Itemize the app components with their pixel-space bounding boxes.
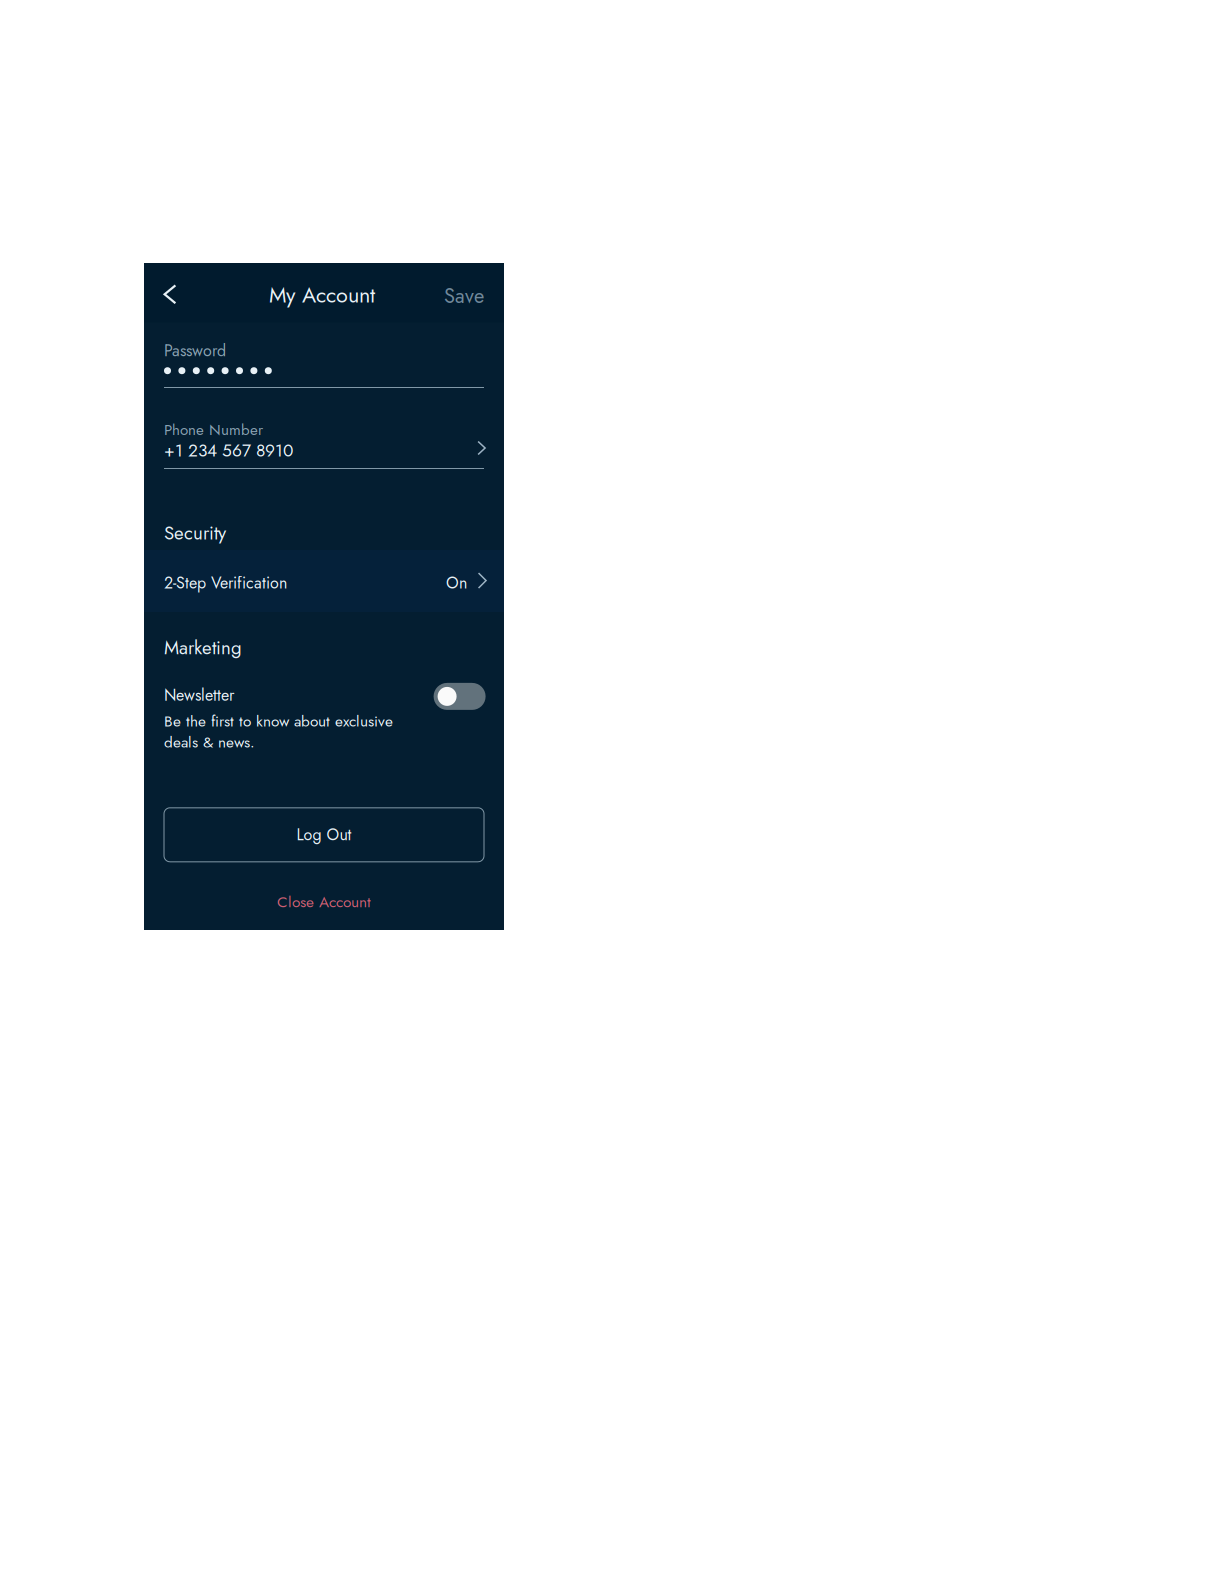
staticText: On [446, 571, 467, 595]
staticText: deals & news. [164, 731, 255, 753]
button[interactable]: Log Out [164, 808, 484, 862]
button[interactable]: 2-Step Verification [144, 550, 504, 612]
staticText: Marketing [164, 634, 242, 661]
staticText: Newsletter [164, 684, 234, 707]
button[interactable]: Back [148, 272, 192, 316]
button[interactable]: Edit phone number [470, 436, 494, 460]
staticText: Log Out [296, 823, 351, 846]
staticText: +1 234 567 8910 [164, 438, 293, 463]
button[interactable]: Save [424, 274, 484, 318]
staticText: Security [164, 519, 226, 546]
button[interactable]: Close Account [144, 890, 504, 914]
staticText: Close Account [277, 891, 371, 913]
staticText: Save [444, 281, 484, 310]
staticText: Password [164, 339, 226, 362]
staticText: My Account [269, 279, 375, 311]
button[interactable]: Newsletter [434, 683, 486, 710]
staticText: Phone Number [164, 419, 263, 441]
staticText: Be the first to know about exclusive [164, 710, 393, 732]
staticText: 2-Step Verification [164, 571, 287, 595]
